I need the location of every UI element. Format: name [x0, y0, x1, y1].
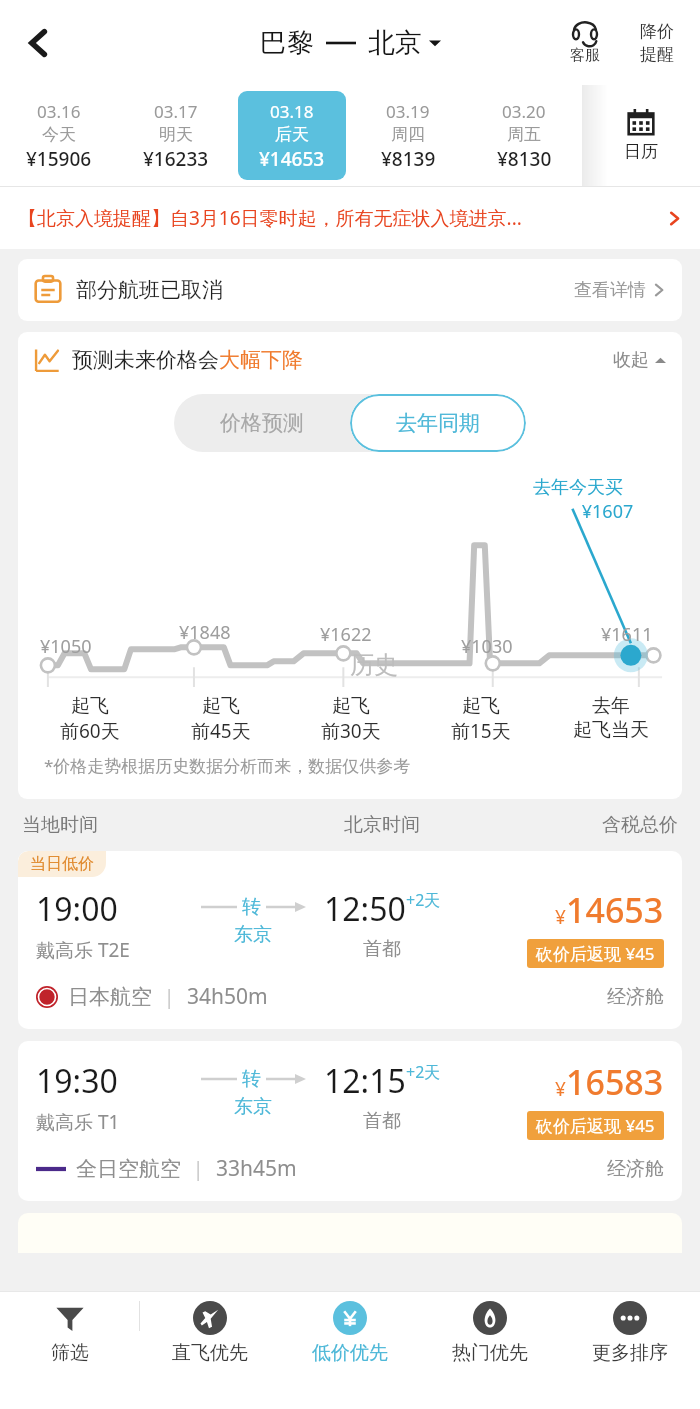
staticText: 更多排序: [592, 1341, 668, 1365]
staticText: 东京: [234, 923, 272, 947]
staticText: ¥1848: [179, 620, 231, 645]
staticText: +2天: [406, 889, 441, 911]
staticText: 全日空航空: [76, 1156, 181, 1182]
staticText: ¥15906: [26, 146, 92, 172]
staticText: +2天: [406, 1061, 441, 1083]
staticText: 含税总价: [602, 813, 678, 837]
button[interactable]: 【北京入境提醒】自3月16日零时起，所有无症状入境进京...: [0, 187, 700, 249]
staticText: *价格走势根据历史数据分析而来，数据仅供参考: [44, 754, 411, 777]
button[interactable]: 直飞优先: [140, 1301, 280, 1365]
staticText: 前60天: [60, 718, 120, 744]
staticText: 直飞优先: [172, 1341, 248, 1365]
staticText: 北京: [368, 26, 422, 60]
staticText: ¥1611: [601, 622, 653, 647]
staticText: 起飞: [332, 694, 370, 718]
button[interactable]: Back: [10, 14, 68, 72]
staticText: 03.17: [154, 100, 198, 123]
staticText: ¥14653: [259, 146, 325, 172]
staticText: 前30天: [321, 718, 381, 744]
staticText: 提醒: [640, 44, 674, 65]
button[interactable]: 当日低价: [18, 851, 682, 1029]
staticText: 低价优先: [312, 1341, 388, 1365]
button[interactable]: 筛选: [0, 1301, 139, 1365]
staticText: 16583: [566, 1059, 664, 1105]
staticText: 前15天: [451, 718, 511, 744]
staticText: 34h50m: [187, 982, 268, 1011]
staticText: 12:15: [324, 1059, 406, 1103]
staticText: ¥8130: [497, 146, 552, 172]
staticText: 周四: [391, 124, 425, 145]
staticText: 今天: [42, 124, 76, 145]
staticText: 经济舱: [607, 1157, 664, 1181]
staticText: 经济舱: [607, 985, 664, 1009]
button[interactable]: 低价优先: [280, 1301, 420, 1365]
staticText: 转: [242, 895, 261, 919]
button[interactable]: 日历: [601, 109, 681, 162]
staticText: 03.16: [37, 100, 81, 123]
staticText: 33h45m: [216, 1154, 297, 1183]
staticText: 预测未来价格会: [72, 347, 219, 373]
staticText: 起飞当天: [573, 718, 649, 742]
staticText: 起飞: [71, 694, 109, 718]
staticText: ¥1622: [320, 622, 372, 647]
staticText: 历史: [350, 650, 398, 680]
staticText: ¥8139: [381, 146, 436, 172]
staticText: 戴高乐 T1: [36, 1109, 120, 1135]
staticText: 首都: [363, 1109, 401, 1133]
staticText: 12:50: [324, 887, 406, 931]
staticText: ¥: [555, 1076, 566, 1102]
staticText: 19:00: [36, 887, 118, 931]
staticText: 大幅下降: [219, 347, 303, 373]
staticText: 去年同期: [396, 410, 480, 436]
staticText: 后天: [275, 124, 309, 145]
staticText: 戴高乐 T2E: [36, 937, 130, 963]
staticText: 周五: [507, 124, 541, 145]
staticText: 19:30: [36, 1059, 118, 1103]
staticText: 首都: [363, 937, 401, 961]
staticText: 当日低价: [30, 854, 94, 874]
button[interactable]: 19:30: [18, 1041, 682, 1201]
button[interactable]: 降价: [626, 21, 688, 65]
staticText: 03.20: [502, 100, 546, 123]
button[interactable]: 部分航班已取消: [18, 259, 682, 321]
button[interactable]: 03.18: [238, 91, 346, 180]
button[interactable]: 03.20: [470, 91, 578, 180]
button[interactable]: 价格预测: [174, 394, 350, 452]
staticText: 去年今天买: [533, 476, 623, 499]
staticText: ¥1030: [461, 634, 513, 659]
staticText: 客服: [570, 46, 600, 65]
button[interactable]: 更多排序: [560, 1301, 700, 1365]
staticText: 价格预测: [220, 410, 304, 436]
staticText: 东京: [234, 1095, 272, 1119]
button[interactable]: 去年同期: [350, 394, 526, 452]
button[interactable]: 03.19: [354, 91, 462, 180]
button[interactable]: 收起: [613, 349, 666, 372]
staticText: |: [193, 1156, 204, 1182]
staticText: 转: [242, 1067, 261, 1091]
staticText: 热门优先: [452, 1341, 528, 1365]
staticText: 收起: [613, 349, 649, 372]
button[interactable]: 热门优先: [420, 1301, 560, 1365]
staticText: 降价: [640, 21, 674, 42]
staticText: |: [164, 984, 175, 1010]
staticText: 前45天: [191, 718, 251, 744]
staticText: ¥16233: [143, 146, 209, 172]
staticText: 砍价后返现 ¥45: [536, 942, 655, 965]
staticText: 14653: [566, 887, 664, 933]
staticText: ¥1607: [533, 499, 682, 524]
button[interactable]: 巴黎: [260, 26, 441, 60]
staticText: 日本航空: [68, 984, 152, 1010]
button[interactable]: 客服: [552, 21, 618, 65]
button[interactable]: 03.16: [4, 91, 113, 180]
staticText: 明天: [159, 124, 193, 145]
staticText: 【北京入境提醒】自3月16日零时起，所有无症状入境进京...: [18, 205, 659, 231]
staticText: 查看详情: [574, 279, 646, 302]
staticText: 起飞: [462, 694, 500, 718]
staticText: 砍价后返现 ¥45: [536, 1114, 655, 1137]
staticText: ¥1050: [40, 634, 92, 659]
staticText: 巴黎: [260, 26, 314, 60]
staticText: 北京时间: [344, 813, 420, 837]
button[interactable]: 03.17: [121, 91, 230, 180]
staticText: 部分航班已取消: [76, 277, 223, 303]
staticText: 当地时间: [22, 813, 98, 837]
